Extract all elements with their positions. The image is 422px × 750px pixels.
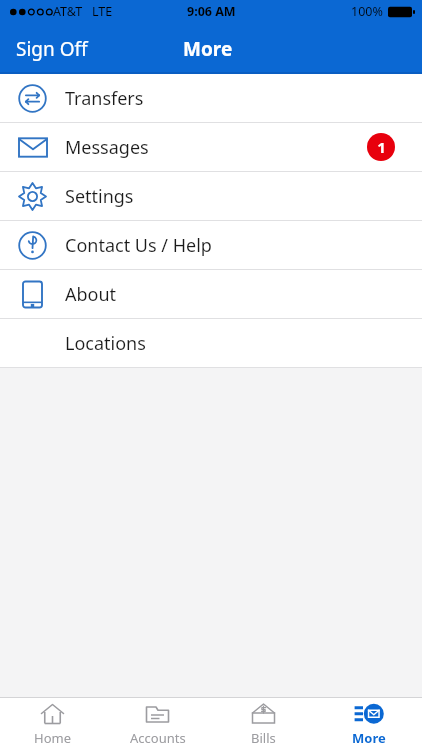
staticText: 100%: [351, 3, 383, 20]
other: Settings: [18, 182, 47, 211]
staticText: Messages: [65, 135, 149, 160]
button[interactable]: Messages: [0, 123, 422, 171]
staticText: 1: [377, 137, 386, 157]
staticText: More: [352, 729, 386, 747]
button[interactable]: About: [0, 270, 422, 318]
staticText: Settings: [65, 184, 134, 209]
staticText: Bills: [251, 729, 276, 747]
staticText: Contact Us / Help: [65, 233, 212, 258]
button[interactable]: Bills: [210, 698, 316, 750]
button[interactable]: Sign Off: [8, 30, 96, 68]
other: Bills: [251, 702, 276, 727]
button[interactable]: Transfers: [0, 74, 422, 122]
button[interactable]: Accounts: [105, 698, 210, 750]
button[interactable]: Home: [0, 698, 105, 750]
staticText: About: [65, 282, 117, 307]
staticText: LTE: [92, 3, 113, 20]
staticText: Transfers: [65, 86, 144, 111]
staticText: 9:06 AM: [187, 3, 236, 20]
other: About: [22, 280, 43, 309]
staticText: Home: [34, 729, 71, 747]
button[interactable]: Settings: [0, 172, 422, 220]
staticText: More: [183, 36, 233, 62]
button[interactable]: More: [316, 698, 422, 750]
other: Contact Us / Help: [18, 231, 47, 260]
other: Messages: [18, 136, 48, 159]
staticText: Accounts: [130, 729, 186, 747]
staticText: Sign Off: [16, 36, 88, 62]
button[interactable]: Contact Us / Help: [0, 221, 422, 269]
staticText: Locations: [65, 331, 146, 356]
other: Accounts: [145, 702, 170, 727]
other: Home: [40, 702, 65, 727]
button[interactable]: Locations: [0, 319, 422, 367]
other: Transfers: [18, 84, 47, 113]
other: More: [354, 702, 384, 727]
staticText: AT&T: [53, 3, 83, 20]
